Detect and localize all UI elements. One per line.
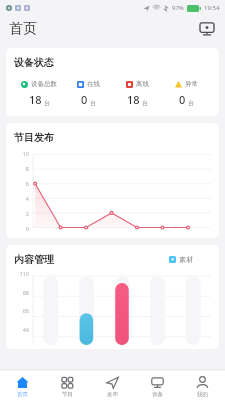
- button[interactable]: 设备: [135, 370, 180, 403]
- staticText: 首页: [17, 391, 28, 398]
- staticText: 台: [142, 99, 148, 107]
- staticText: 异常: [185, 80, 198, 88]
- staticText: 2: [25, 210, 29, 217]
- staticText: 97%: [172, 4, 184, 12]
- button[interactable]: 首页: [0, 370, 45, 403]
- staticText: 设备: [152, 391, 163, 398]
- staticText: 0: [81, 92, 88, 107]
- button[interactable]: 节目发布: [6, 123, 219, 238]
- staticText: 6: [25, 180, 29, 187]
- button[interactable]: 设备状态: [6, 48, 219, 116]
- staticText: 88: [22, 289, 29, 296]
- button[interactable]: 内容管理: [6, 245, 219, 349]
- button[interactable]: Display: [197, 19, 217, 39]
- staticText: 我的: [197, 391, 208, 398]
- button[interactable]: 设备总数: [14, 80, 64, 107]
- staticText: 台: [90, 99, 96, 107]
- staticText: 发布: [107, 391, 118, 398]
- staticText: 设备状态: [14, 56, 54, 69]
- staticText: 台: [44, 99, 50, 107]
- staticText: 节目: [62, 391, 73, 398]
- staticText: 0: [179, 92, 186, 107]
- button[interactable]: 在线: [64, 80, 113, 107]
- button[interactable]: 发布: [90, 370, 135, 403]
- staticText: 在线: [87, 80, 100, 88]
- staticText: 66: [22, 307, 29, 314]
- button[interactable]: 素材: [169, 255, 193, 264]
- staticText: 离线: [136, 80, 149, 88]
- staticText: 18: [127, 92, 140, 107]
- staticText: 19:54: [204, 4, 220, 12]
- staticText: 首页: [9, 20, 37, 38]
- staticText: 10: [22, 150, 29, 157]
- button[interactable]: 离线: [113, 80, 162, 107]
- staticText: 0: [25, 225, 29, 232]
- button[interactable]: 异常: [162, 80, 211, 107]
- staticText: 素材: [179, 255, 193, 264]
- button[interactable]: 我的: [180, 370, 225, 403]
- staticText: 44: [22, 326, 29, 333]
- staticText: 内容管理: [14, 253, 54, 266]
- staticText: 8: [25, 165, 29, 172]
- staticText: 18: [29, 92, 42, 107]
- staticText: 节目发布: [14, 131, 54, 144]
- staticText: 台: [188, 99, 194, 107]
- staticText: 4: [25, 195, 29, 202]
- staticText: 设备总数: [31, 80, 57, 88]
- button[interactable]: 节目: [45, 370, 90, 403]
- staticText: 110: [19, 270, 29, 277]
